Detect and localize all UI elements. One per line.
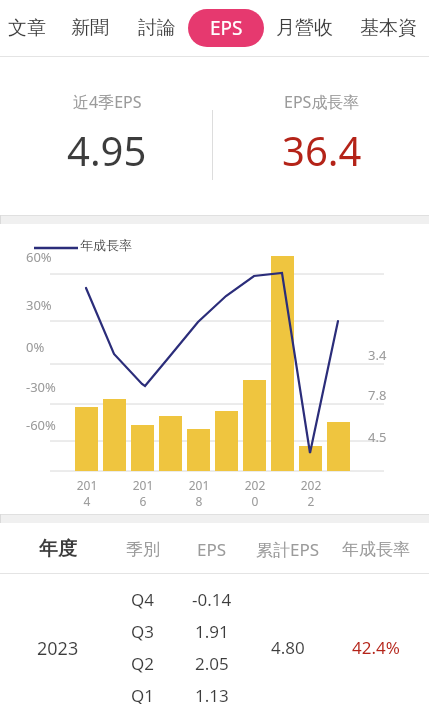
- staticText: 30%: [26, 296, 52, 314]
- staticText: -60%: [26, 416, 56, 434]
- button[interactable]: EPS: [188, 9, 264, 47]
- staticText: 4.5: [368, 428, 387, 446]
- staticText: 4.95: [67, 123, 147, 177]
- staticText: 基本資: [360, 16, 417, 40]
- staticText: 季別: [126, 539, 160, 560]
- staticText: Q4: [131, 588, 155, 611]
- button[interactable]: 新聞: [71, 8, 109, 48]
- staticText: 討論: [138, 16, 176, 40]
- button[interactable]: 基本資: [360, 8, 417, 48]
- button[interactable]: 2023: [0, 574, 429, 704]
- staticText: Q3: [131, 620, 155, 643]
- staticText: 36.4: [282, 123, 362, 177]
- staticText: 0%: [26, 338, 45, 356]
- staticText: 4.80: [271, 636, 305, 659]
- staticText: 年度: [39, 537, 77, 561]
- staticText: 1.91: [195, 620, 229, 643]
- staticText: 42.4%: [352, 636, 400, 659]
- staticText: Q2: [131, 652, 155, 675]
- staticText: EPS成長率: [284, 91, 360, 113]
- staticText: 新聞: [71, 16, 109, 40]
- staticText: 年成長率: [80, 237, 132, 253]
- staticText: 2023: [37, 636, 79, 661]
- staticText: 2022: [298, 477, 324, 509]
- staticText: 累計EPS: [256, 538, 320, 561]
- staticText: 年成長率: [342, 539, 410, 560]
- staticText: -0.14: [192, 588, 232, 611]
- button[interactable]: 月營收: [276, 8, 333, 48]
- button[interactable]: 文章: [8, 8, 46, 48]
- staticText: 60%: [26, 248, 52, 266]
- staticText: 2020: [242, 477, 268, 509]
- staticText: 7.8: [368, 386, 387, 404]
- staticText: 2016: [130, 477, 156, 509]
- staticText: Q1: [131, 684, 155, 704]
- staticText: 2014: [74, 477, 100, 509]
- staticText: EPS: [210, 15, 243, 41]
- staticText: 2.05: [195, 652, 229, 675]
- staticText: 1.13: [195, 684, 229, 704]
- staticText: -30%: [26, 378, 56, 396]
- staticText: 3.4: [368, 346, 387, 364]
- staticText: 文章: [8, 16, 46, 40]
- button[interactable]: 近4季EPS: [0, 57, 214, 213]
- button[interactable]: EPS成長率: [214, 57, 429, 213]
- staticText: 近4季EPS: [73, 91, 142, 113]
- staticText: EPS: [197, 538, 227, 561]
- button[interactable]: 討論: [138, 8, 176, 48]
- staticText: 2018: [186, 477, 212, 509]
- staticText: 月營收: [276, 16, 333, 40]
